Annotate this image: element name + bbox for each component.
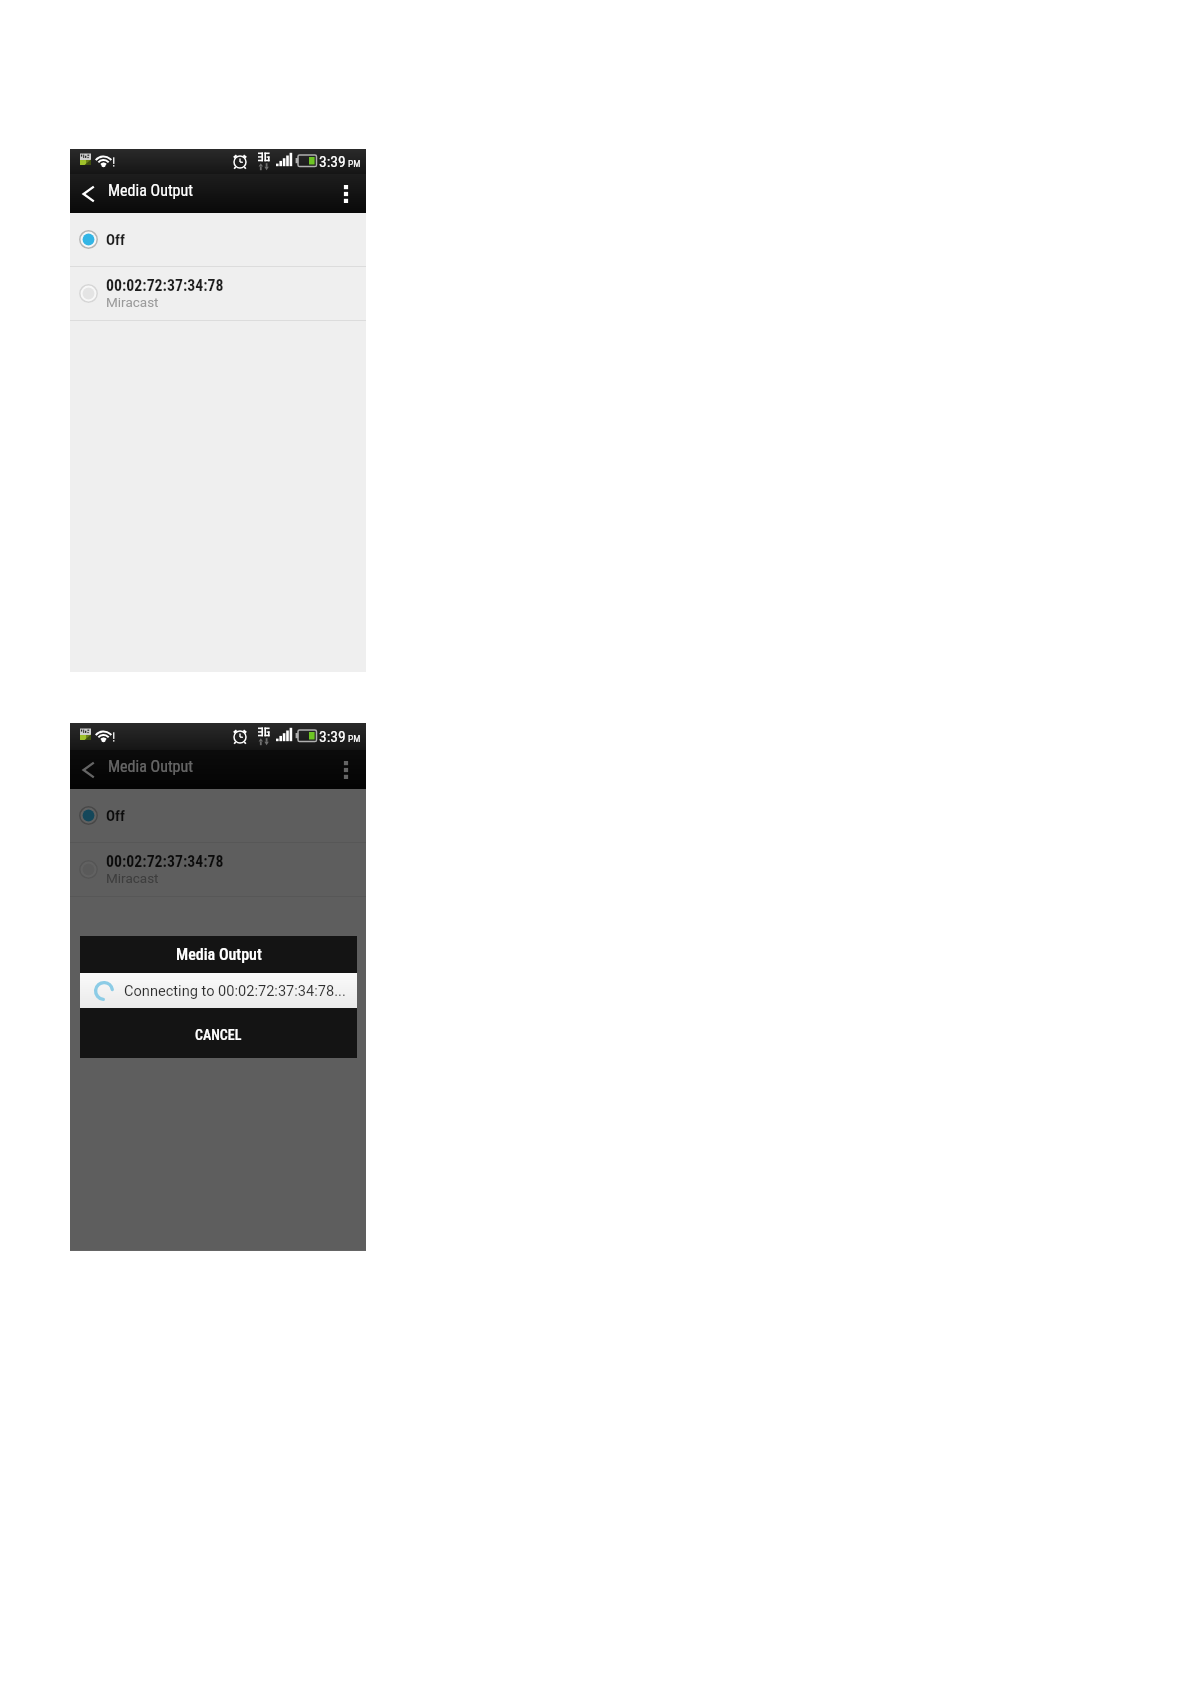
staticText: Media Output <box>108 181 193 200</box>
staticText: PM <box>348 158 361 169</box>
staticText: 00:02:72:37:34:78 <box>106 852 224 871</box>
staticText: Off <box>106 807 125 825</box>
button[interactable]: 00:02:72:37:34:78 <box>70 267 366 320</box>
button[interactable]: Back <box>70 750 108 789</box>
staticText: CANCEL <box>195 1027 242 1043</box>
staticText: Connecting to 00:02:72:37:34:78... <box>124 982 346 999</box>
staticText: 3:39 <box>319 728 346 746</box>
button[interactable]: 00:02:72:37:34:78 <box>70 843 366 896</box>
staticText: PM <box>348 733 361 744</box>
staticText: Off <box>106 231 125 249</box>
button[interactable]: More options <box>326 174 366 213</box>
staticText: Miracast <box>106 870 159 886</box>
button[interactable]: Off <box>70 213 366 266</box>
staticText: 00:02:72:37:34:78 <box>106 276 224 295</box>
staticText: Media Output <box>108 757 193 776</box>
button[interactable]: CANCEL <box>80 1008 357 1058</box>
staticText: 3:39 <box>319 153 346 171</box>
staticText: Media Output <box>176 945 262 964</box>
staticText: Miracast <box>106 294 159 310</box>
button[interactable]: More options <box>326 750 366 789</box>
button[interactable]: Off <box>70 789 366 842</box>
button[interactable]: Back <box>70 174 108 213</box>
